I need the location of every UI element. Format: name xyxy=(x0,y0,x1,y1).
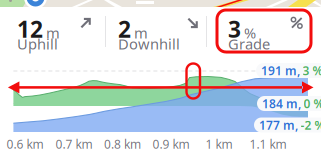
staticText: 0 % xyxy=(303,95,321,111)
staticText: 0.6 km xyxy=(6,136,43,152)
staticText: % xyxy=(244,23,256,43)
staticText: m xyxy=(134,23,148,43)
staticText: 191 m, xyxy=(261,62,300,78)
button[interactable]: 2 xyxy=(118,14,200,54)
staticText: 1 km xyxy=(205,136,232,152)
staticText: 3 % xyxy=(302,62,321,78)
staticText: 2 xyxy=(118,14,131,44)
staticText: Uphill xyxy=(17,34,58,53)
staticText: 12 xyxy=(17,14,43,44)
staticText: 184 m, xyxy=(262,95,301,111)
staticText: -2 % xyxy=(300,117,321,133)
staticText: 1.1 km xyxy=(249,136,286,152)
staticText: Downhill xyxy=(118,34,180,53)
staticText: Grade xyxy=(228,34,270,53)
staticText: 0.8 km xyxy=(104,136,141,152)
staticText: m xyxy=(46,23,60,43)
staticText: 3 xyxy=(228,14,241,44)
button[interactable]: 12 xyxy=(17,14,93,54)
staticText: 177 m, xyxy=(259,117,298,133)
staticText: 0.7 km xyxy=(55,136,92,152)
button[interactable]: 3 xyxy=(228,14,304,54)
staticText: 0.9 km xyxy=(152,136,189,152)
